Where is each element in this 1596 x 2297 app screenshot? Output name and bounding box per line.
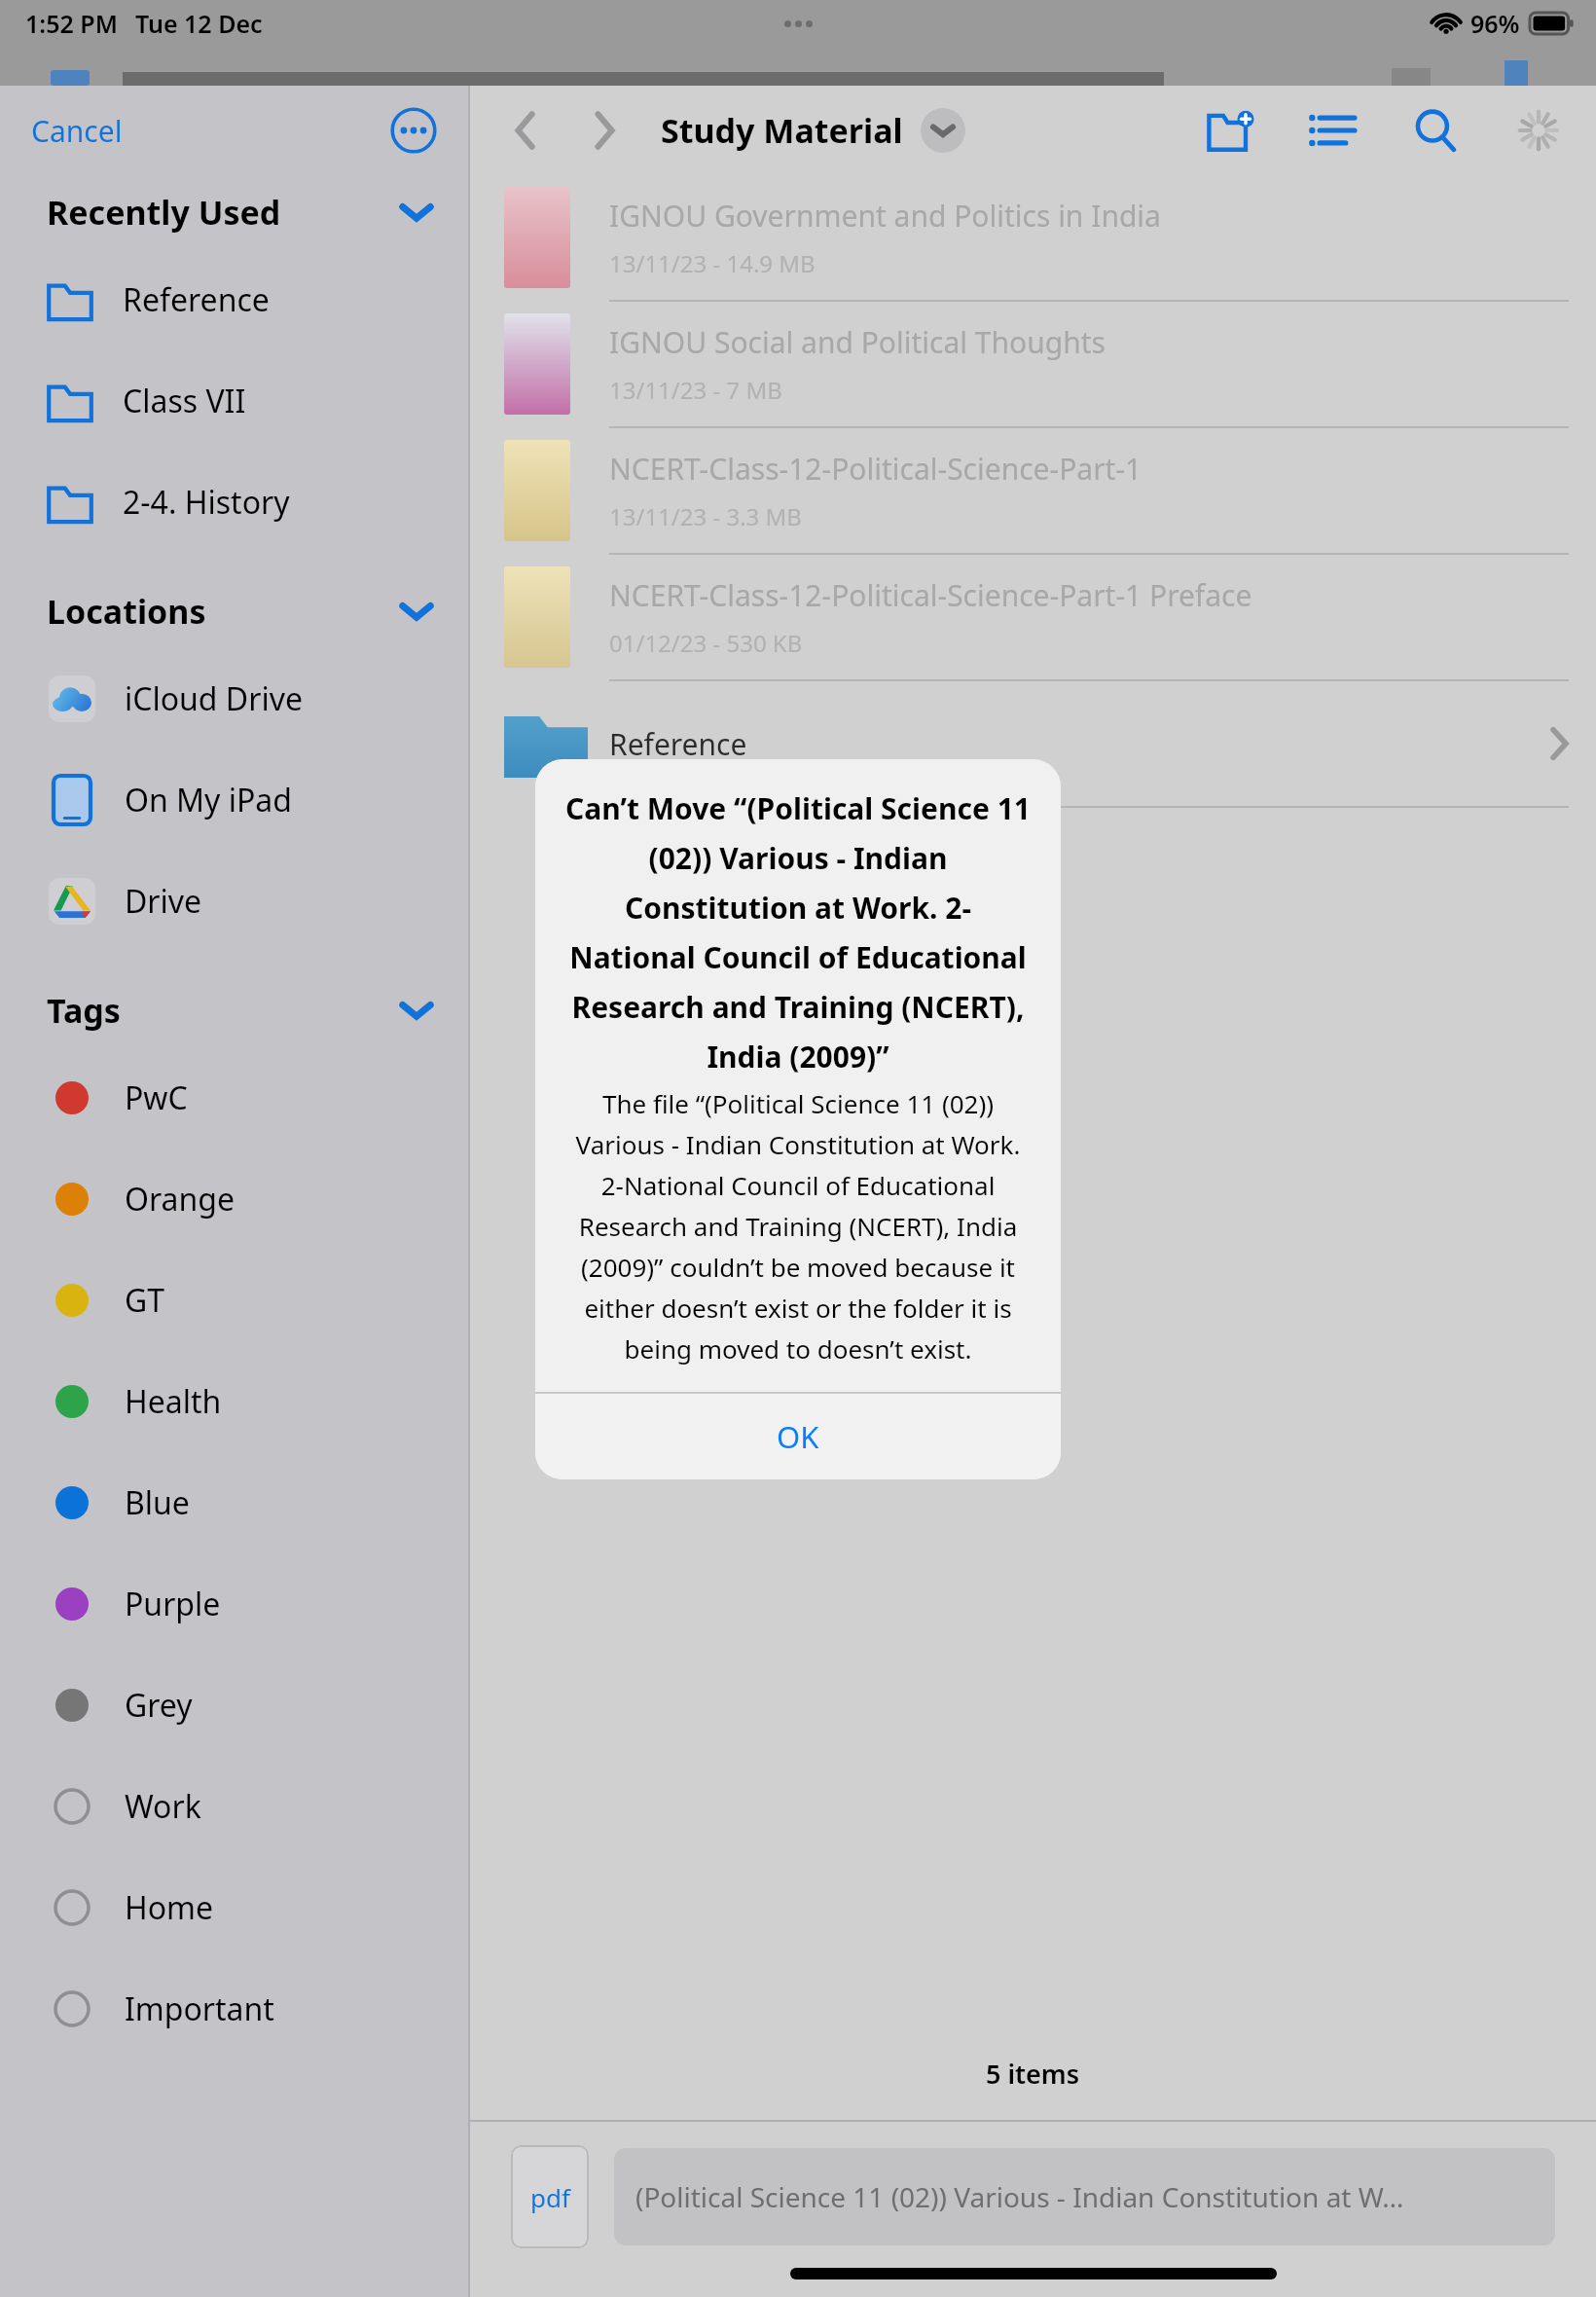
staticText: Class VII (123, 380, 246, 422)
staticText: Important (125, 1987, 274, 2030)
staticText: Drive (125, 880, 202, 923)
button[interactable]: Locations (0, 574, 468, 648)
button[interactable]: Class VII (0, 350, 468, 452)
staticText: NCERT-Class-12-Political-Science-Part-1 (609, 449, 1143, 489)
staticText: Orange (125, 1178, 236, 1221)
staticText: Study Material (661, 108, 903, 153)
staticText: Blue (125, 1481, 190, 1524)
staticText: Reference (123, 278, 270, 321)
staticText: iCloud Drive (125, 677, 304, 720)
staticText: 13/11/23 - 14.9 MB (609, 247, 816, 279)
staticText: 5 items (986, 2056, 1080, 2092)
staticText: On My iPad (125, 779, 293, 821)
staticText: PwC (125, 1076, 188, 1119)
staticText: Cancel (31, 111, 123, 151)
button[interactable]: Work (0, 1756, 468, 1857)
button[interactable]: IGNOU Government and Politics in India (470, 175, 1596, 300)
button[interactable]: PwC (0, 1047, 468, 1148)
staticText: 01/12/23 - 530 KB (609, 627, 803, 659)
staticText: Health (125, 1380, 222, 1423)
button[interactable]: New folder (1199, 100, 1259, 161)
button[interactable]: Home (0, 1857, 468, 1958)
staticText: pdf (530, 2180, 570, 2214)
button[interactable]: Forward (577, 103, 632, 158)
staticText: Tue 12 Dec (135, 7, 263, 40)
staticText: OK (777, 1416, 819, 1457)
button[interactable]: Back (497, 103, 552, 158)
button[interactable]: More options (388, 105, 439, 156)
button[interactable]: iCloud Drive (0, 648, 468, 749)
staticText: Purple (125, 1583, 221, 1625)
button[interactable]: Reference (470, 681, 1596, 806)
button[interactable]: Blue (0, 1452, 468, 1553)
staticText: 13/11/23 - 3.3 MB (609, 500, 802, 532)
staticText: IGNOU Government and Politics in India (609, 196, 1161, 236)
button[interactable]: GT (0, 1250, 468, 1351)
staticText: Grey (125, 1684, 193, 1727)
staticText: 13/11/23 - 7 MB (609, 374, 782, 406)
button[interactable]: Folder actions (921, 108, 965, 153)
staticText: (Political Science 11 (02)) Various - In… (635, 2178, 1404, 2215)
staticText: IGNOU Social and Political Thoughts (609, 322, 1106, 362)
staticText: GT (125, 1279, 165, 1322)
button[interactable]: Grey (0, 1655, 468, 1756)
staticText: 1:52 PM (25, 7, 118, 40)
button[interactable]: 2-4. History (0, 452, 468, 553)
button[interactable]: Cancel (18, 103, 136, 159)
button[interactable]: Drive (0, 851, 468, 952)
staticText: The file “(Political Science 11 (02)) Va… (562, 1086, 1034, 1367)
button[interactable]: Tags (0, 973, 468, 1047)
button[interactable]: Orange (0, 1148, 468, 1250)
staticText: Locations (47, 589, 206, 634)
button[interactable]: Loading (1508, 100, 1569, 161)
button[interactable]: Important (0, 1958, 468, 2060)
staticText: Work (125, 1785, 201, 1828)
button[interactable]: (Political Science 11 (02)) Various - In… (614, 2148, 1555, 2245)
staticText: Home (125, 1886, 214, 1929)
button[interactable]: List view (1302, 100, 1362, 161)
button[interactable]: NCERT-Class-12-Political-Science-Part-1 … (470, 555, 1596, 679)
staticText: Can’t Move “(Political Science 11 (02)) … (562, 788, 1034, 1076)
button[interactable]: Health (0, 1351, 468, 1452)
button[interactable]: Purple (0, 1553, 468, 1655)
button[interactable]: Recently Used (0, 175, 468, 249)
button[interactable]: OK (535, 1394, 1061, 1479)
staticText: Recently Used (47, 190, 281, 235)
button[interactable]: Search (1405, 100, 1466, 161)
staticText: Tags (47, 988, 121, 1033)
staticText: Reference (609, 724, 747, 764)
button[interactable]: On My iPad (0, 749, 468, 851)
staticText: 2-4. History (123, 481, 290, 524)
button[interactable]: Reference (0, 249, 468, 350)
button[interactable]: pdf (511, 2145, 589, 2248)
button[interactable]: IGNOU Social and Political Thoughts (470, 302, 1596, 426)
button[interactable]: NCERT-Class-12-Political-Science-Part-1 (470, 428, 1596, 553)
staticText: NCERT-Class-12-Political-Science-Part-1 … (609, 575, 1252, 615)
staticText: 96% (1470, 7, 1520, 40)
